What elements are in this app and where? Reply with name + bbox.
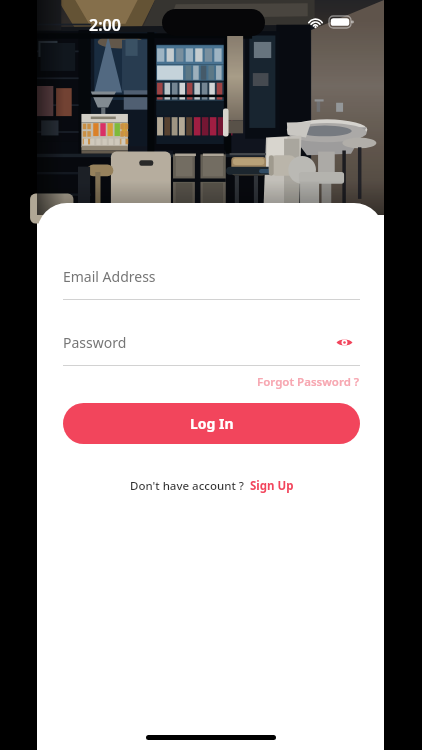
button[interactable]: Show password (332, 331, 356, 353)
staticText: Password (63, 333, 127, 352)
button[interactable]: Log In (63, 403, 360, 444)
button[interactable]: Forgot Password ? (257, 374, 360, 390)
staticText: Don't have account ? (130, 478, 250, 494)
staticText: Log In (190, 414, 234, 433)
staticText: 2:00 (89, 14, 121, 36)
button[interactable]: Sign Up (250, 478, 294, 494)
staticText: Email Address (63, 267, 156, 286)
